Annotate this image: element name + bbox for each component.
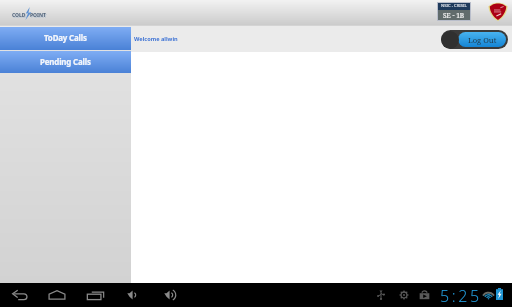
button[interactable]: Home [48, 290, 66, 300]
staticText: Pending Calls [40, 57, 91, 68]
staticText: POINT [30, 12, 46, 19]
staticText: COLD [13, 13, 27, 20]
button[interactable]: ToDay Calls [0, 27, 131, 50]
button[interactable]: Back [12, 290, 28, 300]
other: Battery charging [496, 288, 503, 300]
staticText: Welcome allwin [134, 35, 178, 43]
staticText: POINT [31, 13, 47, 20]
button[interactable]: Log Out [441, 30, 508, 49]
other: USB connected [377, 290, 385, 300]
button[interactable]: Recent apps [87, 290, 104, 300]
staticText: Log Out [468, 35, 497, 45]
button[interactable]: Volume up [164, 290, 178, 300]
other: Wi-Fi [482, 289, 495, 300]
button[interactable]: Pending Calls [0, 51, 131, 73]
button[interactable]: Volume down [127, 290, 141, 300]
staticText: SE - 1B [443, 11, 465, 20]
other: Play Store [419, 290, 430, 300]
staticText: 5:25 [440, 285, 482, 307]
staticText: NSIC - CRISIL [441, 3, 467, 9]
other: Company emblem [488, 2, 508, 21]
staticText: COLD [12, 12, 26, 19]
staticText: ToDay Calls [44, 33, 87, 44]
other: USB debugging [399, 290, 409, 300]
